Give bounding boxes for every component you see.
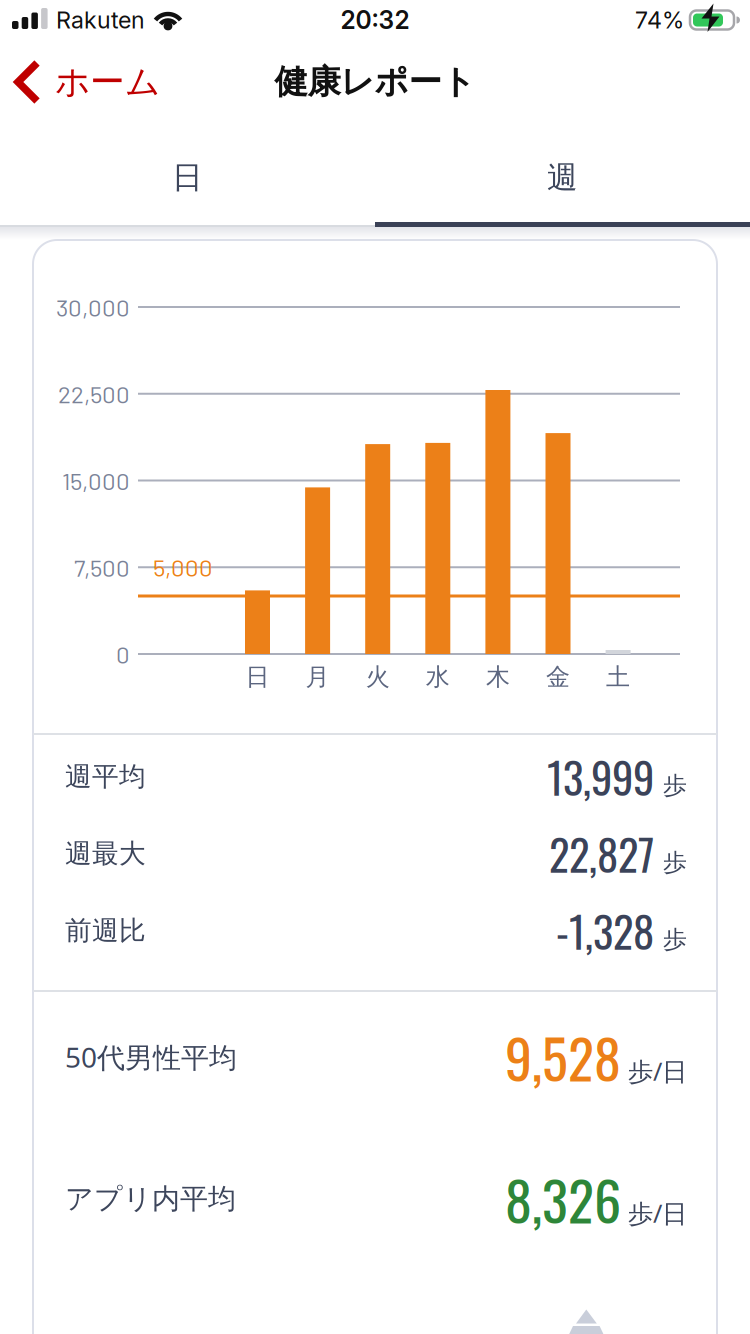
staticText: 歩/日 [628, 1054, 687, 1088]
staticText: 木 [486, 662, 510, 692]
staticText: 20:32 [340, 5, 409, 35]
staticText: 歩 [663, 925, 687, 954]
staticText: 土 [606, 662, 630, 692]
staticText: 7,500 [74, 553, 130, 582]
staticText: 火 [366, 662, 390, 692]
staticText: 歩/日 [628, 1196, 687, 1230]
staticText: 8,326 [505, 1159, 621, 1239]
staticText: 金 [546, 662, 570, 692]
staticText: 5,000 [153, 553, 213, 581]
staticText: アプリ内平均 [65, 1182, 236, 1216]
button[interactable]: 週 [375, 124, 750, 227]
button[interactable]: ホーム [0, 61, 160, 103]
staticText: 週平均 [65, 760, 146, 793]
staticText: 週 [547, 159, 578, 196]
staticText: 15,000 [62, 466, 130, 495]
staticText: 50代男性平均 [65, 1038, 237, 1076]
staticText: Rakuten [56, 6, 145, 34]
staticText: 74% [635, 6, 684, 34]
staticText: 日 [172, 159, 203, 196]
button[interactable]: 日 [0, 124, 375, 227]
staticText: 前週比 [65, 914, 146, 947]
staticText: 歩 [663, 771, 687, 800]
staticText: 22,500 [58, 379, 130, 408]
staticText: 0 [116, 640, 130, 668]
staticText: ホーム [55, 61, 160, 103]
staticText: 月 [306, 662, 330, 692]
staticText: -1,328 [556, 899, 654, 962]
staticText: 週最大 [65, 837, 146, 870]
staticText: 水 [426, 662, 450, 692]
staticText: 13,999 [547, 745, 654, 808]
staticText: 日 [245, 662, 269, 692]
staticText: 歩 [663, 848, 687, 877]
staticText: 健康レポート [274, 61, 475, 102]
staticText: 30,000 [56, 293, 130, 321]
staticText: 22,827 [549, 822, 654, 885]
staticText: 9,528 [505, 1017, 621, 1097]
